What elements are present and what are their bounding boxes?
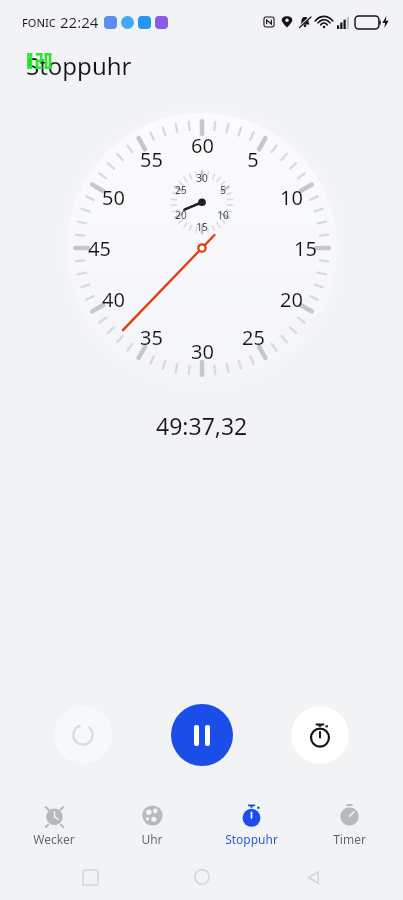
button[interactable]: Pause <box>171 704 233 766</box>
staticText: 50 <box>102 184 125 211</box>
staticText: 10 <box>280 184 303 211</box>
staticText: Uhr <box>141 831 163 847</box>
staticText: Stoppuhr <box>225 831 278 847</box>
staticText: 22:24 <box>60 12 99 32</box>
staticText: 20 <box>280 286 303 313</box>
staticText: 55 <box>140 146 163 173</box>
staticText: 5 <box>220 183 226 197</box>
staticText: FONIC <box>22 15 56 30</box>
staticText: 30 <box>196 171 208 185</box>
staticText: 30 <box>191 338 214 365</box>
button[interactable]: Runde <box>291 706 349 764</box>
staticText: 5 <box>247 146 259 173</box>
staticText: 40 <box>102 286 125 313</box>
staticText: 10 <box>217 208 229 222</box>
staticText: 20 <box>175 208 187 222</box>
staticText: Timer <box>333 831 366 847</box>
staticText: 25 <box>175 183 187 197</box>
staticText: 49:37,32 <box>156 410 248 441</box>
button[interactable]: Zurück <box>291 855 335 899</box>
button[interactable]: Uhr <box>107 800 197 851</box>
button[interactable]: Zurücksetzen <box>54 706 112 764</box>
staticText: 15 <box>294 235 317 262</box>
staticText: 45 <box>88 235 111 262</box>
staticText: Wecker <box>33 831 75 847</box>
button[interactable]: Stoppuhr <box>206 800 296 851</box>
button[interactable]: Recents <box>68 855 112 899</box>
staticText: 35 <box>140 324 163 351</box>
staticText: 15 <box>196 220 208 234</box>
button[interactable]: Home <box>180 855 224 899</box>
button[interactable]: Timer <box>304 800 394 851</box>
button[interactable]: Wecker <box>9 800 99 851</box>
staticText: Stoppuhr <box>26 49 132 82</box>
staticText: 60 <box>191 132 214 159</box>
staticText: 25 <box>242 324 265 351</box>
